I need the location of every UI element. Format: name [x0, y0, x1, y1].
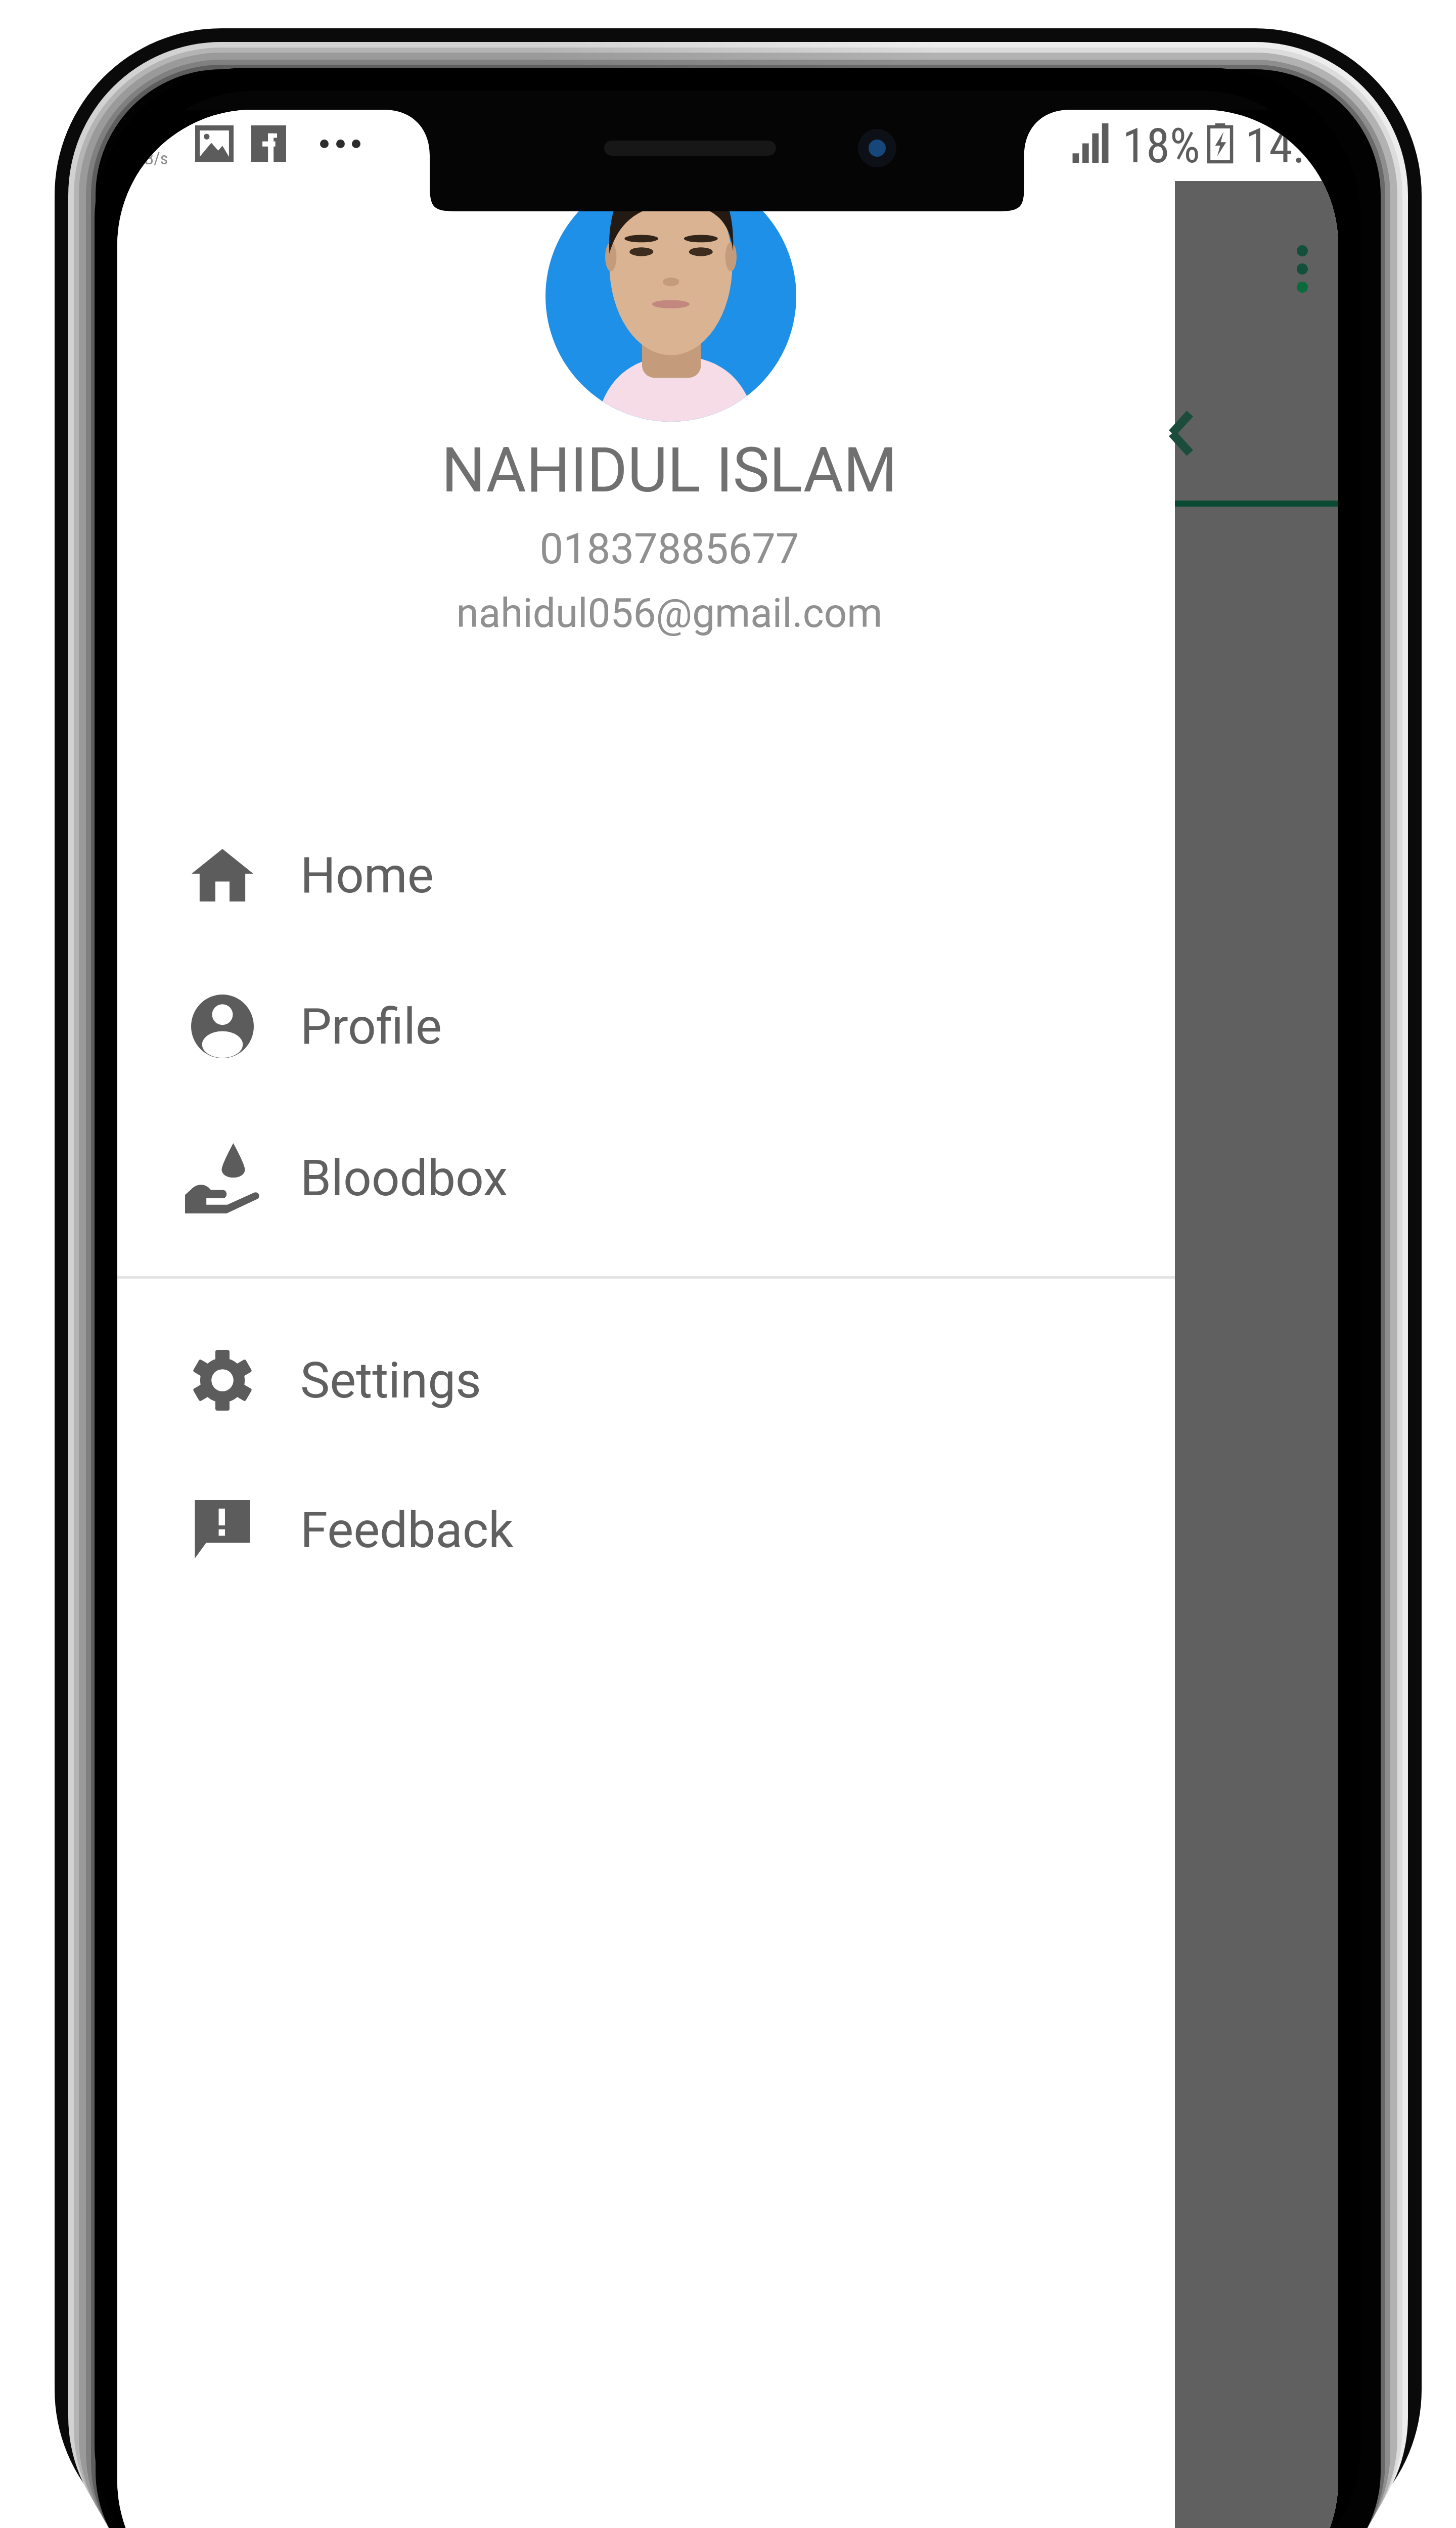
- button[interactable]: Home: [117, 819, 1175, 932]
- staticText: Feedback: [300, 1501, 514, 1559]
- staticText: 01837885677: [141, 524, 1198, 573]
- staticText: KB/s: [135, 148, 168, 168]
- staticText: Profile: [300, 998, 442, 1056]
- staticText: NAHIDUL ISLAM: [141, 434, 1198, 507]
- button[interactable]: Bloodbox: [117, 1121, 1175, 1235]
- button[interactable]: Settings: [117, 1324, 1175, 1437]
- button[interactable]: Profile: [117, 970, 1175, 1083]
- staticText: 18%: [1122, 118, 1200, 174]
- button[interactable]: Feedback: [117, 1473, 1175, 1587]
- staticText: Home: [300, 846, 434, 905]
- staticText: Bloodbox: [300, 1149, 508, 1207]
- staticText: nahidul056@gmail.com: [141, 590, 1198, 637]
- staticText: Settings: [300, 1351, 481, 1410]
- staticText: 14.: [1245, 118, 1305, 174]
